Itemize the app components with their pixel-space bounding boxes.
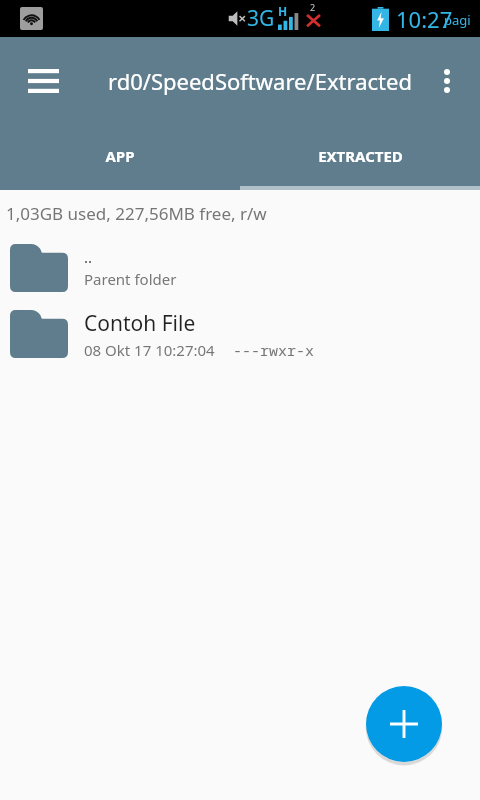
button[interactable]: ..	[0, 235, 480, 301]
staticText: 1,03GB used, 227,56MB free, r/w	[6, 202, 267, 225]
staticText: 2	[310, 1, 316, 13]
staticText: Parent folder	[84, 269, 177, 289]
button[interactable]: Contoh File	[0, 301, 480, 367]
staticText: 3G	[247, 4, 275, 33]
button[interactable]: EXTRACTED	[240, 125, 480, 186]
staticText: EXTRACTED	[318, 146, 403, 166]
staticText: H	[278, 3, 288, 19]
staticText: 10:27	[396, 4, 453, 34]
button[interactable]: Add	[366, 686, 442, 762]
staticText: APP	[105, 146, 135, 166]
staticText: Contoh File	[84, 309, 196, 338]
button[interactable]: Open navigation drawer	[14, 61, 72, 101]
staticText: 08 Okt 17 10:27:04	[84, 340, 215, 360]
button[interactable]: More options	[424, 61, 470, 101]
staticText: ---rwxr-x	[233, 340, 315, 360]
staticText: ..	[84, 247, 93, 267]
staticText: pagi	[444, 11, 471, 29]
button[interactable]: rd0/SpeedSoftware/Extracted	[108, 66, 412, 96]
button[interactable]: APP	[0, 125, 240, 186]
